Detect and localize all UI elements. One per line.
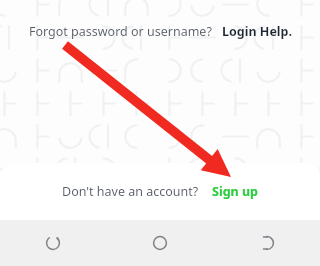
staticText: Login Help. (222, 23, 292, 40)
button[interactable]: Home (106, 220, 213, 266)
button[interactable]: Login Help. (222, 23, 292, 40)
button[interactable]: Sign up (212, 183, 258, 200)
button[interactable]: Recents (0, 220, 106, 266)
button[interactable]: Forgot password or username? (29, 23, 212, 40)
button[interactable]: Back (213, 220, 320, 266)
staticText: Don't have an account? (62, 183, 199, 200)
staticText: Sign up (212, 183, 258, 200)
staticText: Forgot password or username? (29, 23, 212, 40)
